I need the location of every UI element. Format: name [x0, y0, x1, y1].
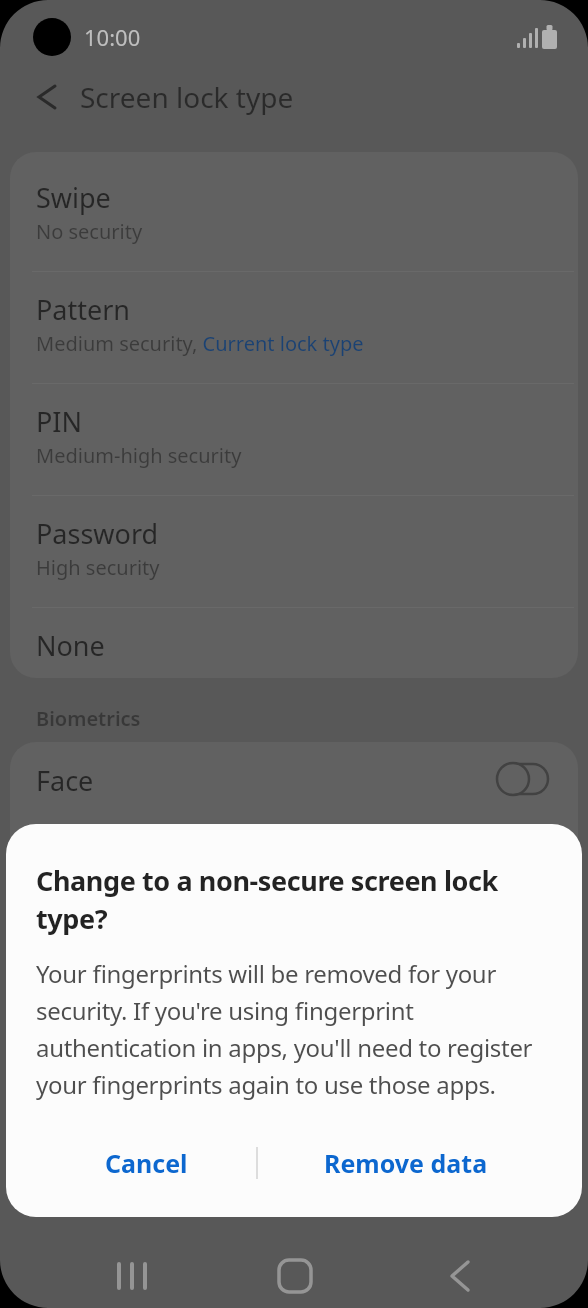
button[interactable]: Face	[10, 742, 578, 854]
button[interactable]: PIN	[10, 383, 578, 495]
staticText: Screen lock type	[80, 78, 294, 116]
button[interactable]: Pattern	[10, 271, 578, 383]
button[interactable]: Swipe	[10, 159, 578, 271]
staticText: Change to a non-secure screen lock type?	[36, 862, 498, 937]
button[interactable]: None	[10, 607, 578, 678]
button[interactable]: Password	[10, 495, 578, 607]
staticText: High security	[36, 554, 160, 581]
staticText: Medium-high security	[36, 442, 242, 469]
staticText: Password	[36, 515, 159, 552]
staticText: Your fingerprints will be removed for yo…	[36, 957, 533, 1101]
button[interactable]	[432, 1250, 488, 1302]
staticText: Cancel	[105, 1146, 188, 1180]
staticText: No security	[36, 218, 143, 245]
staticText: Remove data	[324, 1146, 488, 1180]
staticText: PIN	[36, 403, 83, 440]
staticText: Swipe	[36, 179, 111, 216]
button[interactable]: Cancel	[86, 1143, 206, 1183]
staticText: Biometrics	[36, 705, 141, 732]
button[interactable]: Remove data	[316, 1143, 496, 1183]
staticText: None	[36, 627, 105, 664]
staticText: Face	[36, 762, 94, 799]
staticText: Pattern	[36, 291, 131, 328]
staticText: Medium security, Current lock type	[36, 330, 364, 357]
button[interactable]	[267, 1250, 323, 1302]
button[interactable]	[28, 78, 66, 116]
staticText: 10:00	[84, 22, 141, 52]
button[interactable]	[495, 761, 551, 797]
button[interactable]	[105, 1250, 161, 1302]
